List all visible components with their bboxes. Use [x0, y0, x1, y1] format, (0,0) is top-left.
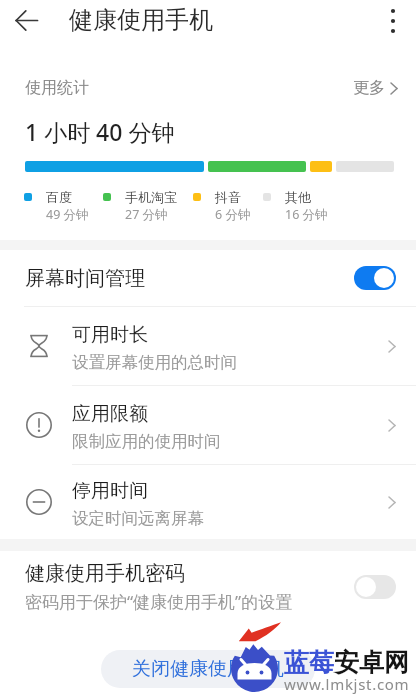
staticText: 设定时间远离屏幕 — [72, 508, 204, 529]
button[interactable]: 健康使用手机密码 — [0, 551, 416, 623]
staticText: 49 分钟 — [46, 206, 89, 223]
staticText: 27 分钟 — [125, 206, 168, 223]
staticText: 应用限额 — [72, 402, 148, 426]
button[interactable]: 使用统计 — [0, 73, 416, 103]
button[interactable]: More options — [370, 0, 416, 41]
staticText: 健康使用手机密码 — [25, 561, 185, 586]
staticText: 6 分钟 — [215, 206, 251, 223]
button[interactable]: Off — [354, 575, 396, 599]
staticText: 安卓网 — [334, 647, 409, 678]
button[interactable]: Back — [0, 0, 52, 41]
staticText: 设置屏幕使用的总时间 — [72, 352, 237, 373]
button[interactable]: 可用时长 — [0, 307, 416, 385]
staticText: 16 分钟 — [285, 206, 328, 223]
staticText: 停用时间 — [72, 479, 148, 503]
staticText: 蓝莓 — [284, 647, 334, 678]
staticText: 其他 — [285, 189, 311, 205]
staticText: 更多 — [353, 78, 385, 98]
button[interactable]: 应用限额 — [0, 386, 416, 464]
button[interactable]: 停用时间 — [0, 465, 416, 539]
button[interactable]: On — [354, 266, 396, 290]
staticText: 抖音 — [215, 189, 241, 205]
staticText: 屏幕时间管理 — [25, 266, 145, 291]
staticText: 百度 — [46, 189, 72, 205]
staticText: 使用统计 — [25, 78, 89, 98]
staticText: 密码用于保护“健康使用手机”的设置 — [25, 590, 293, 613]
button[interactable]: 关闭健康使用手机 — [101, 650, 315, 688]
staticText: 限制应用的使用时间 — [72, 431, 221, 452]
staticText: 可用时长 — [72, 323, 148, 347]
staticText: 1 小时 40 分钟 — [25, 116, 175, 147]
button[interactable]: 屏幕时间管理 — [0, 250, 416, 306]
staticText: 健康使用手机 — [69, 5, 213, 35]
staticText: 手机淘宝 — [125, 189, 177, 205]
staticText: 关闭健康使用手机 — [132, 657, 284, 681]
staticText: www.lmkjst.com — [284, 674, 410, 694]
